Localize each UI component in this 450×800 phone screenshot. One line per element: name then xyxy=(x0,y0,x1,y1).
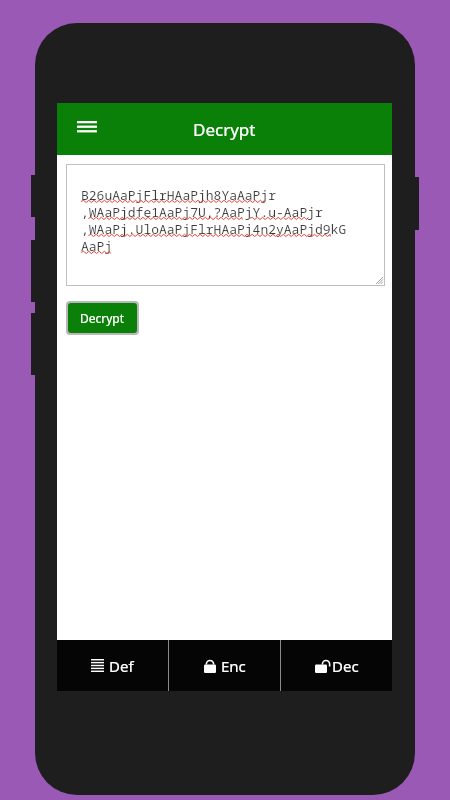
staticText: ,WAaPj.UloAaPjFlrHAaPj4n2yAaPjd9kG xyxy=(81,220,347,237)
staticText: Def xyxy=(109,656,134,676)
staticText: AaPj xyxy=(81,237,113,254)
staticText: Decrypt xyxy=(193,118,256,141)
button[interactable]: Menu xyxy=(69,111,105,147)
staticText: Decrypt xyxy=(80,310,125,326)
staticText: ,WAaPjdfe1AaPj7U,?AaPjY.u-AaPjr xyxy=(81,203,323,220)
button[interactable]: Enc xyxy=(169,640,280,691)
button[interactable]: Decrypt xyxy=(68,303,137,333)
staticText: Enc xyxy=(221,656,246,676)
button[interactable]: Dec xyxy=(281,640,392,691)
staticText: B26uAaPjFlrHAaPjh8YaAaPjr xyxy=(81,186,277,203)
staticText: Dec xyxy=(332,656,359,676)
button[interactable]: B26uAaPjFlrHAaPjh8YaAaPjr xyxy=(66,164,385,286)
button[interactable]: Def xyxy=(57,640,168,691)
